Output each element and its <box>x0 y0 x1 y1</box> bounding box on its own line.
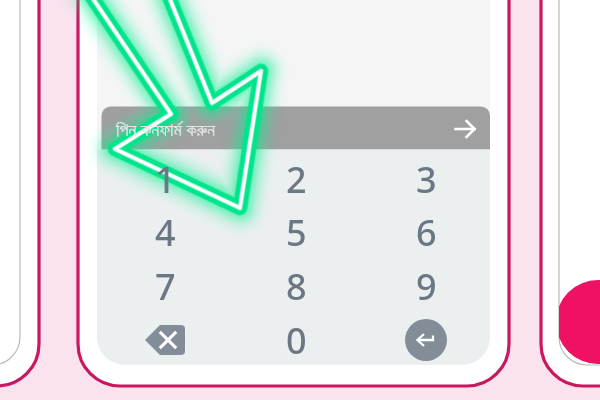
button[interactable]: 2 <box>231 153 361 205</box>
button[interactable]: 9 <box>361 260 491 312</box>
staticText: 0 <box>286 316 307 365</box>
staticText: 7 <box>155 262 176 311</box>
staticText: 6 <box>416 208 437 257</box>
button[interactable]: 3 <box>361 153 491 205</box>
staticText: 2 <box>286 155 307 204</box>
staticText: 8 <box>286 262 307 311</box>
staticText: 4 <box>155 208 176 257</box>
button[interactable]: 6 <box>361 206 491 258</box>
button[interactable]: 8 <box>231 260 361 312</box>
button[interactable]: 4 <box>100 206 230 258</box>
button[interactable]: 1 <box>100 153 230 205</box>
button[interactable]: 0 <box>231 314 361 366</box>
staticText: 3 <box>416 155 437 204</box>
button[interactable]: Backspace <box>100 314 230 366</box>
button[interactable]: 7 <box>100 260 230 312</box>
staticText: 9 <box>416 262 437 311</box>
staticText: 5 <box>286 208 307 257</box>
button[interactable]: 5 <box>231 206 361 258</box>
staticText: 1 <box>155 155 176 204</box>
button[interactable]: Enter <box>361 314 491 366</box>
button[interactable]: পিন কনফার্ম করুন <box>102 107 491 150</box>
staticText: পিন কনফার্ম করুন <box>116 117 216 142</box>
